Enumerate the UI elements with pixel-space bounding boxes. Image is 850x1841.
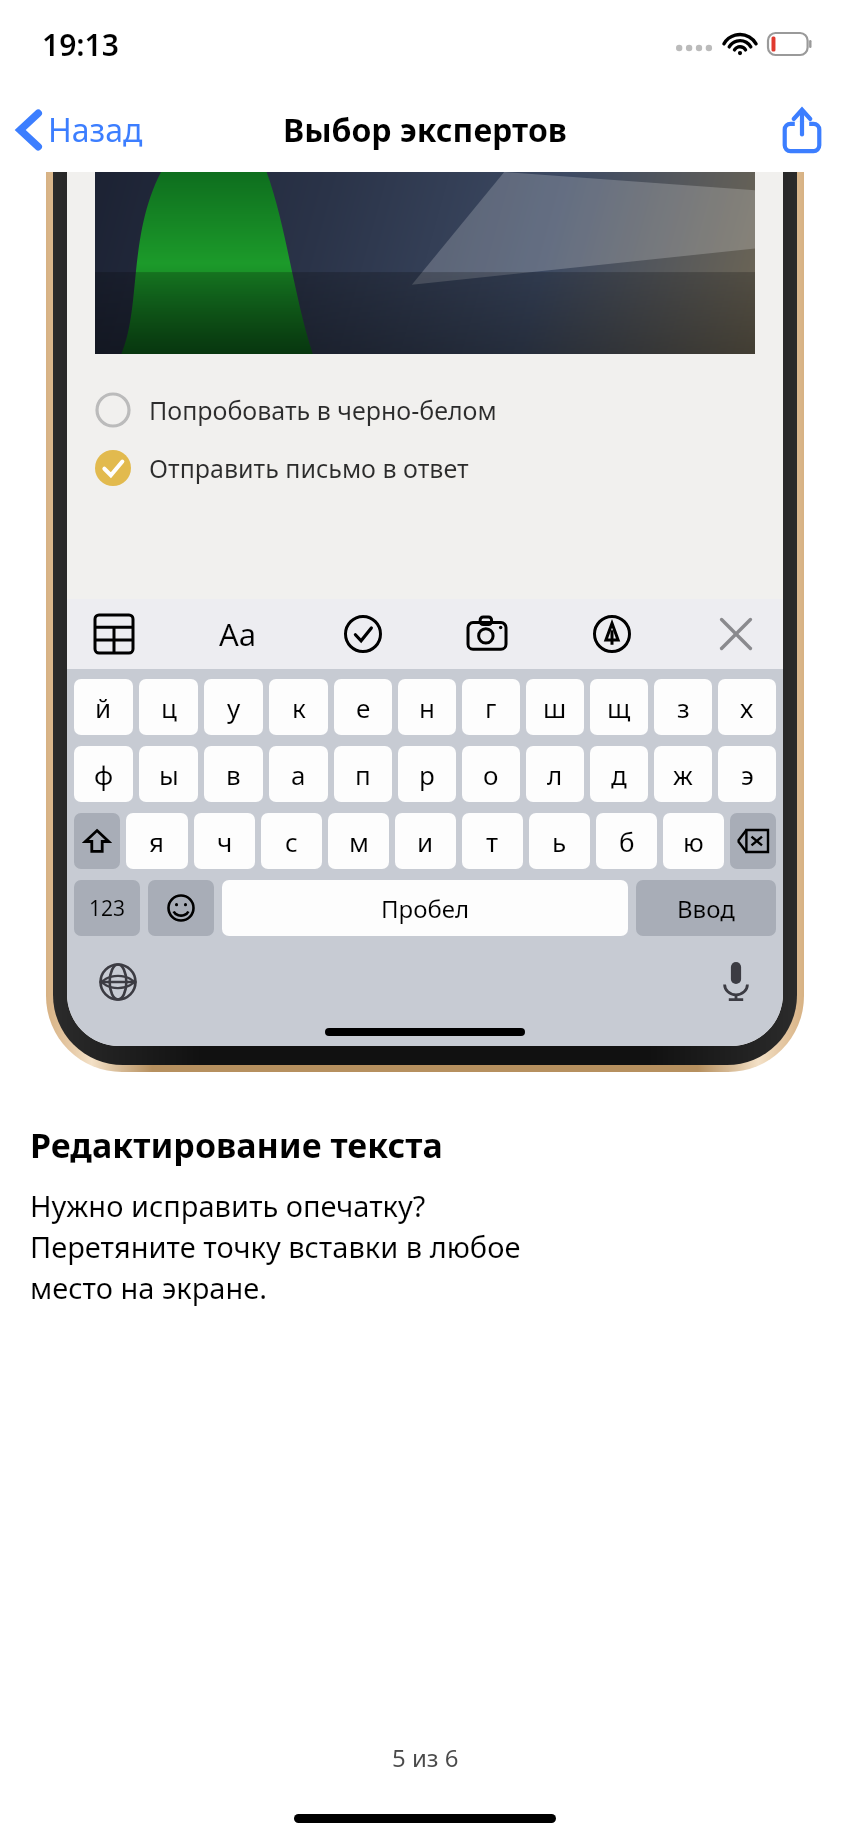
button[interactable]: Камера [462, 609, 512, 659]
button[interactable]: ь [529, 813, 590, 869]
staticText: ч [217, 824, 233, 859]
button[interactable]: к [269, 679, 328, 735]
button[interactable]: п [334, 746, 392, 802]
staticText: и [417, 824, 434, 859]
button[interactable]: ф [74, 746, 133, 802]
staticText: Пробел [381, 892, 470, 925]
staticText: т [486, 824, 499, 859]
button[interactable]: Эмодзи [148, 880, 214, 936]
button[interactable]: ы [139, 746, 198, 802]
button[interactable]: о [462, 746, 520, 802]
staticText: д [611, 757, 627, 792]
staticText: 123 [89, 894, 126, 923]
staticText: н [419, 690, 435, 725]
staticText: е [356, 690, 371, 725]
button[interactable]: х [718, 679, 776, 735]
staticText: п [355, 757, 371, 792]
staticText: Ввод [677, 892, 735, 925]
button[interactable]: а [269, 746, 328, 802]
button[interactable]: т [462, 813, 523, 869]
button[interactable]: Пробел [222, 880, 628, 936]
button[interactable]: Поделиться [768, 98, 850, 162]
staticText: с [285, 824, 298, 859]
staticText: х [740, 690, 754, 725]
button[interactable]: р [398, 746, 456, 802]
button[interactable]: з [654, 679, 712, 735]
staticText: я [149, 824, 165, 859]
button[interactable]: е [334, 679, 392, 735]
button[interactable]: л [526, 746, 584, 802]
button[interactable]: Aa [213, 607, 263, 661]
button[interactable]: Назад [0, 100, 153, 160]
staticText: Aa [219, 613, 257, 655]
staticText: Попробовать в черно-белом [149, 393, 497, 427]
button[interactable]: с [261, 813, 322, 869]
button[interactable]: д [590, 746, 648, 802]
staticText: ы [159, 757, 179, 792]
staticText: а [291, 757, 306, 792]
button[interactable]: ш [526, 679, 584, 735]
button[interactable]: ж [654, 746, 712, 802]
staticText: о [483, 757, 499, 792]
staticText: ю [683, 824, 704, 859]
staticText: ц [161, 690, 177, 725]
button[interactable]: я [126, 813, 188, 869]
button[interactable]: Диктовка [717, 958, 755, 1006]
staticText: Отправить письмо в ответ [149, 451, 469, 485]
staticText: б [619, 824, 635, 859]
button[interactable]: щ [590, 679, 648, 735]
staticText: Нужно исправить опечатку? Перетяните точ… [30, 1186, 521, 1308]
button[interactable]: Язык [95, 959, 141, 1005]
staticText: Выбор экспертов [283, 108, 567, 152]
staticText: м [349, 824, 369, 859]
staticText: ж [673, 757, 693, 792]
button[interactable]: н [398, 679, 456, 735]
button[interactable]: Shift [74, 813, 120, 869]
staticText: ш [543, 690, 567, 725]
button[interactable]: и [395, 813, 456, 869]
button[interactable]: ю [663, 813, 724, 869]
button[interactable]: Готово [338, 609, 388, 659]
staticText: в [226, 757, 241, 792]
staticText: 5 из 6 [392, 1741, 459, 1774]
button[interactable]: ц [139, 679, 198, 735]
button[interactable]: Отправить письмо в ответ [67, 446, 783, 490]
button[interactable]: Попробовать в черно-белом [67, 388, 783, 432]
button[interactable]: Разметка [587, 609, 637, 659]
button[interactable]: Таблица [89, 609, 139, 659]
button[interactable]: г [462, 679, 520, 735]
button[interactable]: 123 [74, 880, 140, 936]
button[interactable]: э [718, 746, 776, 802]
staticText: э [741, 757, 754, 792]
staticText: щ [607, 690, 631, 725]
staticText: 19:13 [42, 24, 119, 65]
staticText: у [227, 690, 241, 725]
staticText: Редактирование текста [30, 1122, 443, 1168]
staticText: й [95, 690, 112, 725]
staticText: л [547, 757, 563, 792]
staticText: ь [552, 824, 567, 859]
button[interactable]: у [204, 679, 263, 735]
button[interactable]: м [328, 813, 389, 869]
staticText: з [677, 690, 690, 725]
button[interactable]: б [596, 813, 657, 869]
staticText: р [419, 757, 435, 792]
button[interactable]: й [74, 679, 133, 735]
button[interactable]: Удалить [730, 813, 776, 869]
staticText: Назад [48, 108, 143, 152]
button[interactable]: ч [194, 813, 255, 869]
button[interactable]: Ввод [636, 880, 776, 936]
staticText: к [292, 690, 306, 725]
staticText: ф [94, 757, 114, 792]
staticText: г [485, 690, 497, 725]
button[interactable]: в [204, 746, 263, 802]
button[interactable]: Закрыть [711, 609, 761, 659]
